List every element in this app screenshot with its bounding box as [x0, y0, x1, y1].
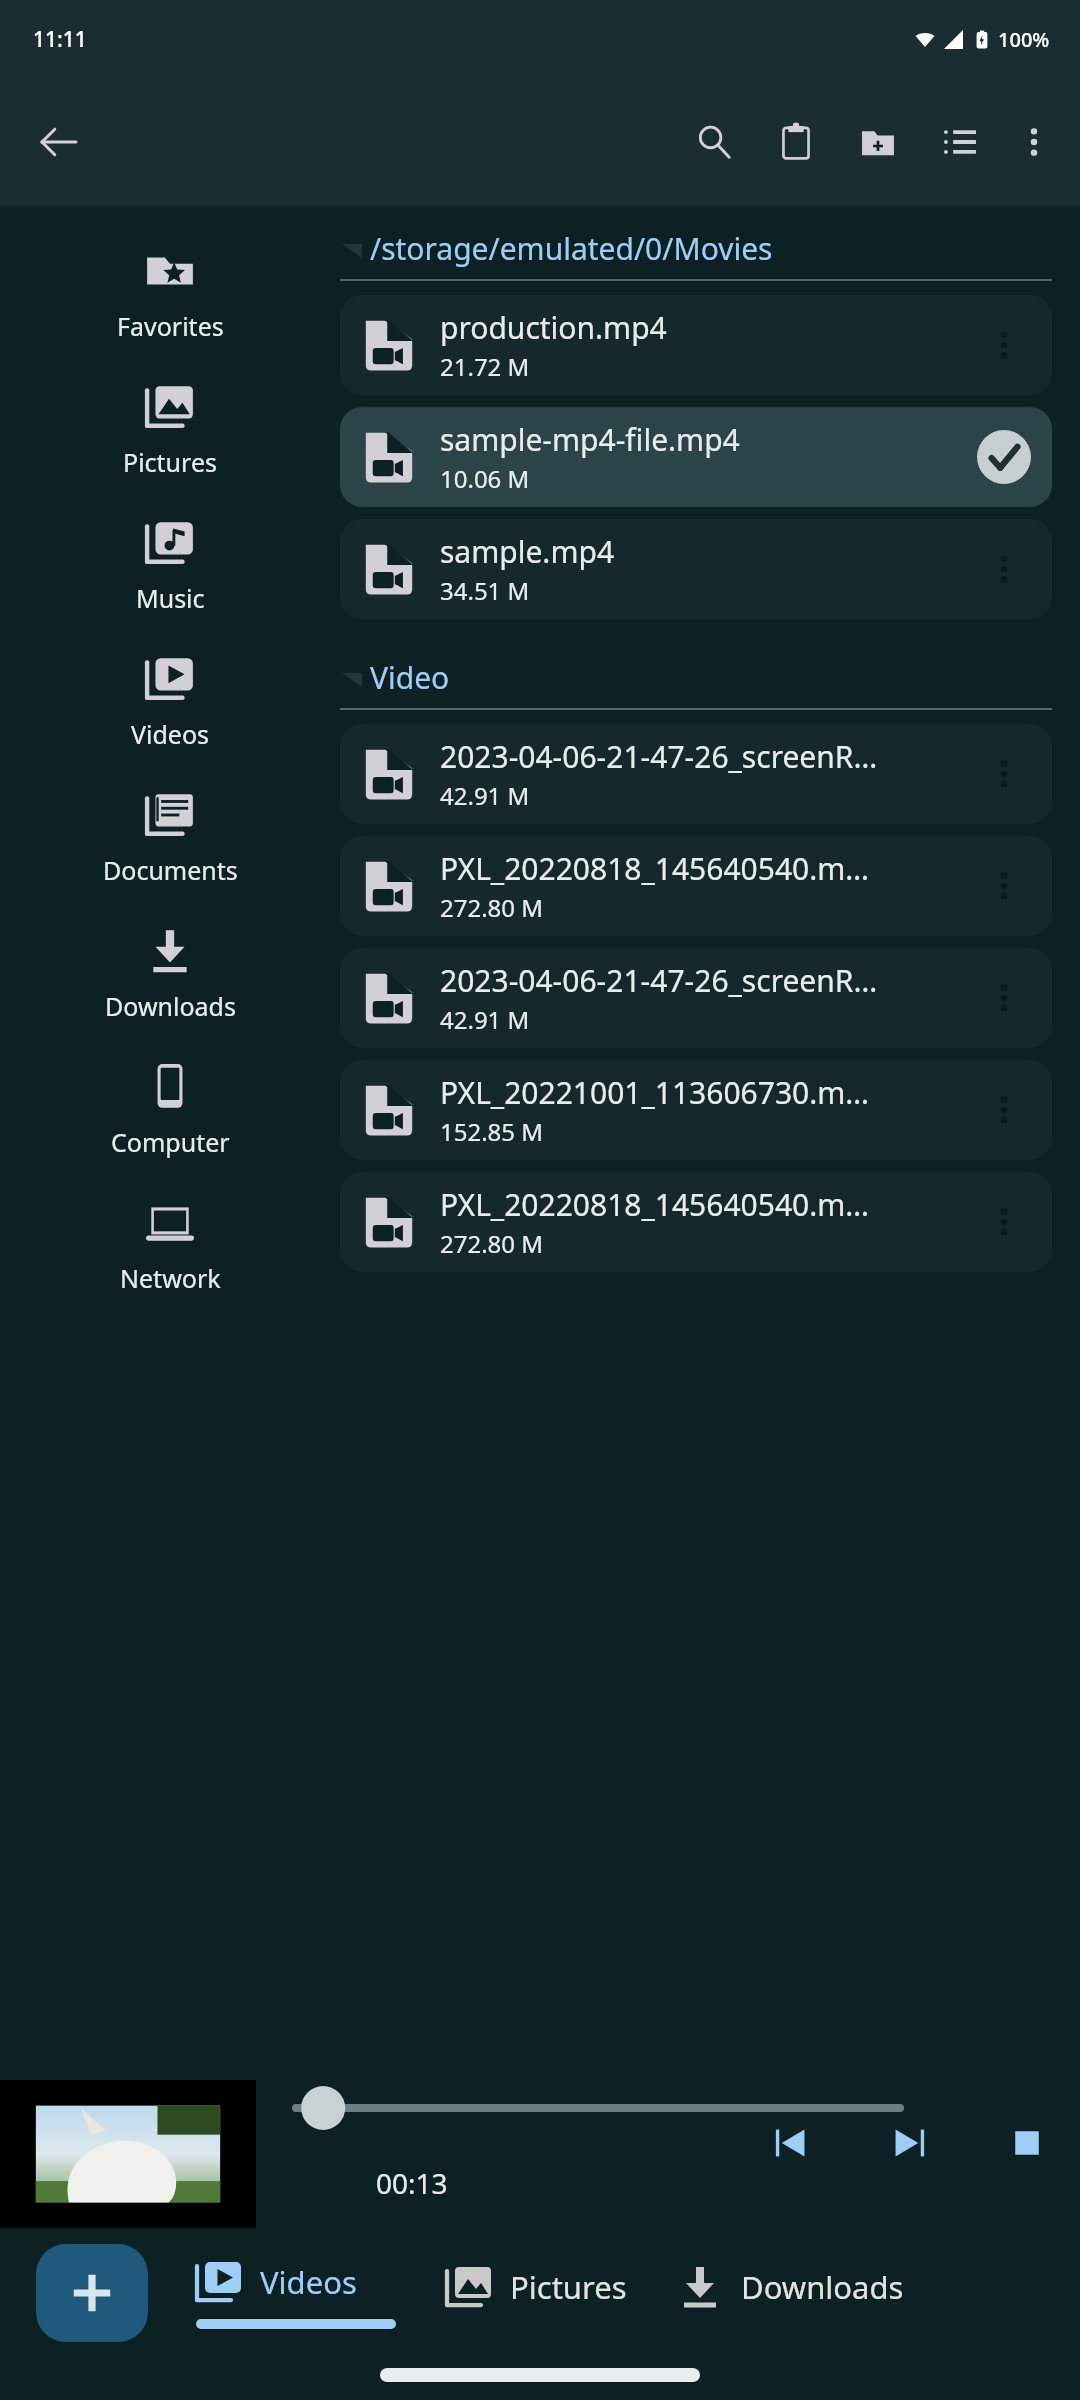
staticText: Pictures — [123, 445, 217, 479]
staticText: 2023-04-06-21-47-26_screenR… — [440, 736, 878, 777]
button[interactable]: Pictures — [444, 2262, 627, 2312]
button[interactable]: Videos — [0, 634, 340, 770]
staticText: 2023-04-06-21-47-26_screenR… — [440, 960, 878, 1001]
button[interactable]: Documents — [0, 770, 340, 906]
staticText: Music — [136, 581, 205, 615]
staticText: 272.80 M — [440, 1227, 544, 1260]
button[interactable] — [296, 2096, 900, 2120]
staticText: Downloads — [105, 989, 236, 1023]
button[interactable]: View mode — [928, 110, 992, 174]
staticText: Videos — [260, 2261, 357, 2303]
button[interactable]: /storage/emulated/0/Movies — [340, 228, 1052, 295]
button[interactable]: 2023-04-06-21-47-26_screenR… — [340, 724, 1052, 824]
button[interactable]: New folder — [846, 110, 910, 174]
staticText: 34.51 M — [440, 574, 530, 607]
button[interactable]: production.mp4 — [340, 295, 1052, 395]
button[interactable]: sample-mp4-file.mp4 — [340, 407, 1052, 507]
staticText: Computer — [111, 1125, 230, 1159]
button[interactable]: Clipboard — [764, 110, 828, 174]
button[interactable]: Pictures — [0, 362, 340, 498]
staticText: 21.72 M — [440, 350, 530, 383]
button[interactable]: Downloads — [675, 2262, 904, 2312]
staticText: 42.91 M — [440, 779, 530, 812]
staticText: PXL_20220818_145640540.m… — [440, 848, 870, 889]
staticText: Network — [120, 1261, 221, 1295]
button[interactable]: Computer — [0, 1042, 340, 1178]
staticText: 42.91 M — [440, 1003, 530, 1036]
staticText: PXL_20220818_145640540.m… — [440, 1184, 870, 1225]
button[interactable]: sample.mp4 — [340, 519, 1052, 619]
button[interactable] — [0, 2080, 256, 2228]
staticText: Pictures — [510, 2266, 627, 2308]
staticText: Video — [370, 657, 450, 698]
button[interactable]: PXL_20220818_145640540.m… — [340, 836, 1052, 936]
staticText: 152.85 M — [440, 1115, 544, 1148]
button[interactable]: Add — [36, 2244, 148, 2342]
staticText: Downloads — [741, 2266, 904, 2308]
staticText: production.mp4 — [440, 307, 667, 348]
button[interactable]: PXL_20220818_145640540.m… — [340, 1172, 1052, 1272]
button[interactable]: Downloads — [0, 906, 340, 1042]
button[interactable]: Videos — [194, 2257, 357, 2307]
staticText: 11:11 — [33, 25, 87, 54]
staticText: PXL_20221001_113606730.m… — [440, 1072, 870, 1113]
button[interactable]: More options — [1002, 110, 1066, 174]
button[interactable]: Back — [22, 106, 94, 178]
staticText: sample.mp4 — [440, 531, 615, 572]
button[interactable]: Music — [0, 498, 340, 634]
button[interactable]: Stop — [992, 2108, 1062, 2178]
staticText: 00:13 — [376, 2164, 448, 2202]
button[interactable]: Search — [682, 110, 746, 174]
staticText: Favorites — [117, 309, 224, 343]
staticText: /storage/emulated/0/Movies — [370, 228, 773, 269]
staticText: 100% — [998, 26, 1050, 53]
staticText: 10.06 M — [440, 462, 530, 495]
button[interactable]: 2023-04-06-21-47-26_screenR… — [340, 948, 1052, 1048]
button[interactable]: PXL_20221001_113606730.m… — [340, 1060, 1052, 1160]
button[interactable]: Next — [874, 2108, 944, 2178]
button[interactable]: Favorites — [0, 226, 340, 362]
staticText: Videos — [131, 717, 210, 751]
button[interactable]: Previous — [756, 2108, 826, 2178]
button[interactable]: Video — [340, 657, 1052, 724]
staticText: 272.80 M — [440, 891, 544, 924]
button[interactable]: Network — [0, 1178, 340, 1314]
staticText: Documents — [103, 853, 238, 887]
staticText: sample-mp4-file.mp4 — [440, 419, 740, 460]
